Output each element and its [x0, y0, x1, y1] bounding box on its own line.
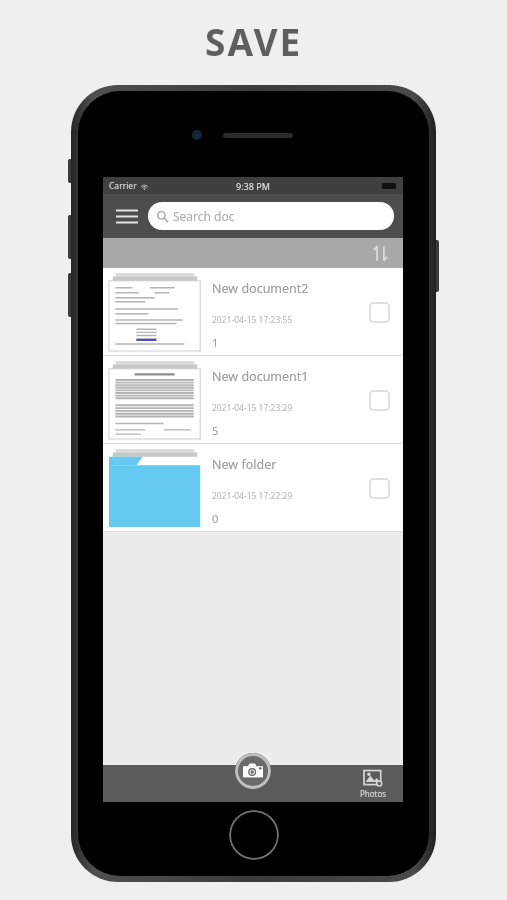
- staticText: Search doc: [173, 208, 235, 224]
- staticText: Photos: [360, 788, 387, 799]
- staticText: 1: [212, 335, 219, 350]
- staticText: SAVE: [205, 16, 303, 66]
- staticText: 2021-04-15 17:22:29: [212, 490, 293, 502]
- button[interactable]: Select New document2: [361, 294, 397, 330]
- staticText: 2021-04-15 17:23:55: [212, 314, 293, 326]
- button[interactable]: Menu: [112, 201, 142, 231]
- staticText: Carrier: [109, 180, 137, 192]
- button[interactable]: Sort: [367, 240, 393, 266]
- button[interactable]: Select New folder: [361, 470, 397, 506]
- staticText: 9:38 PM: [236, 180, 270, 192]
- staticText: 5: [212, 423, 219, 438]
- staticText: New document1: [212, 368, 309, 385]
- button[interactable]: New folder: [103, 444, 403, 531]
- staticText: 0: [212, 511, 219, 526]
- button[interactable]: Search doc: [148, 202, 394, 230]
- staticText: New document2: [212, 280, 309, 297]
- button[interactable]: New document1: [103, 356, 403, 443]
- button[interactable]: New document2: [103, 268, 403, 355]
- button[interactable]: Camera: [235, 753, 271, 789]
- staticText: New folder: [212, 456, 277, 473]
- staticText: 2021-04-15 17:23:29: [212, 402, 293, 414]
- button[interactable]: Photos: [358, 767, 389, 801]
- button[interactable]: Select New document1: [361, 382, 397, 418]
